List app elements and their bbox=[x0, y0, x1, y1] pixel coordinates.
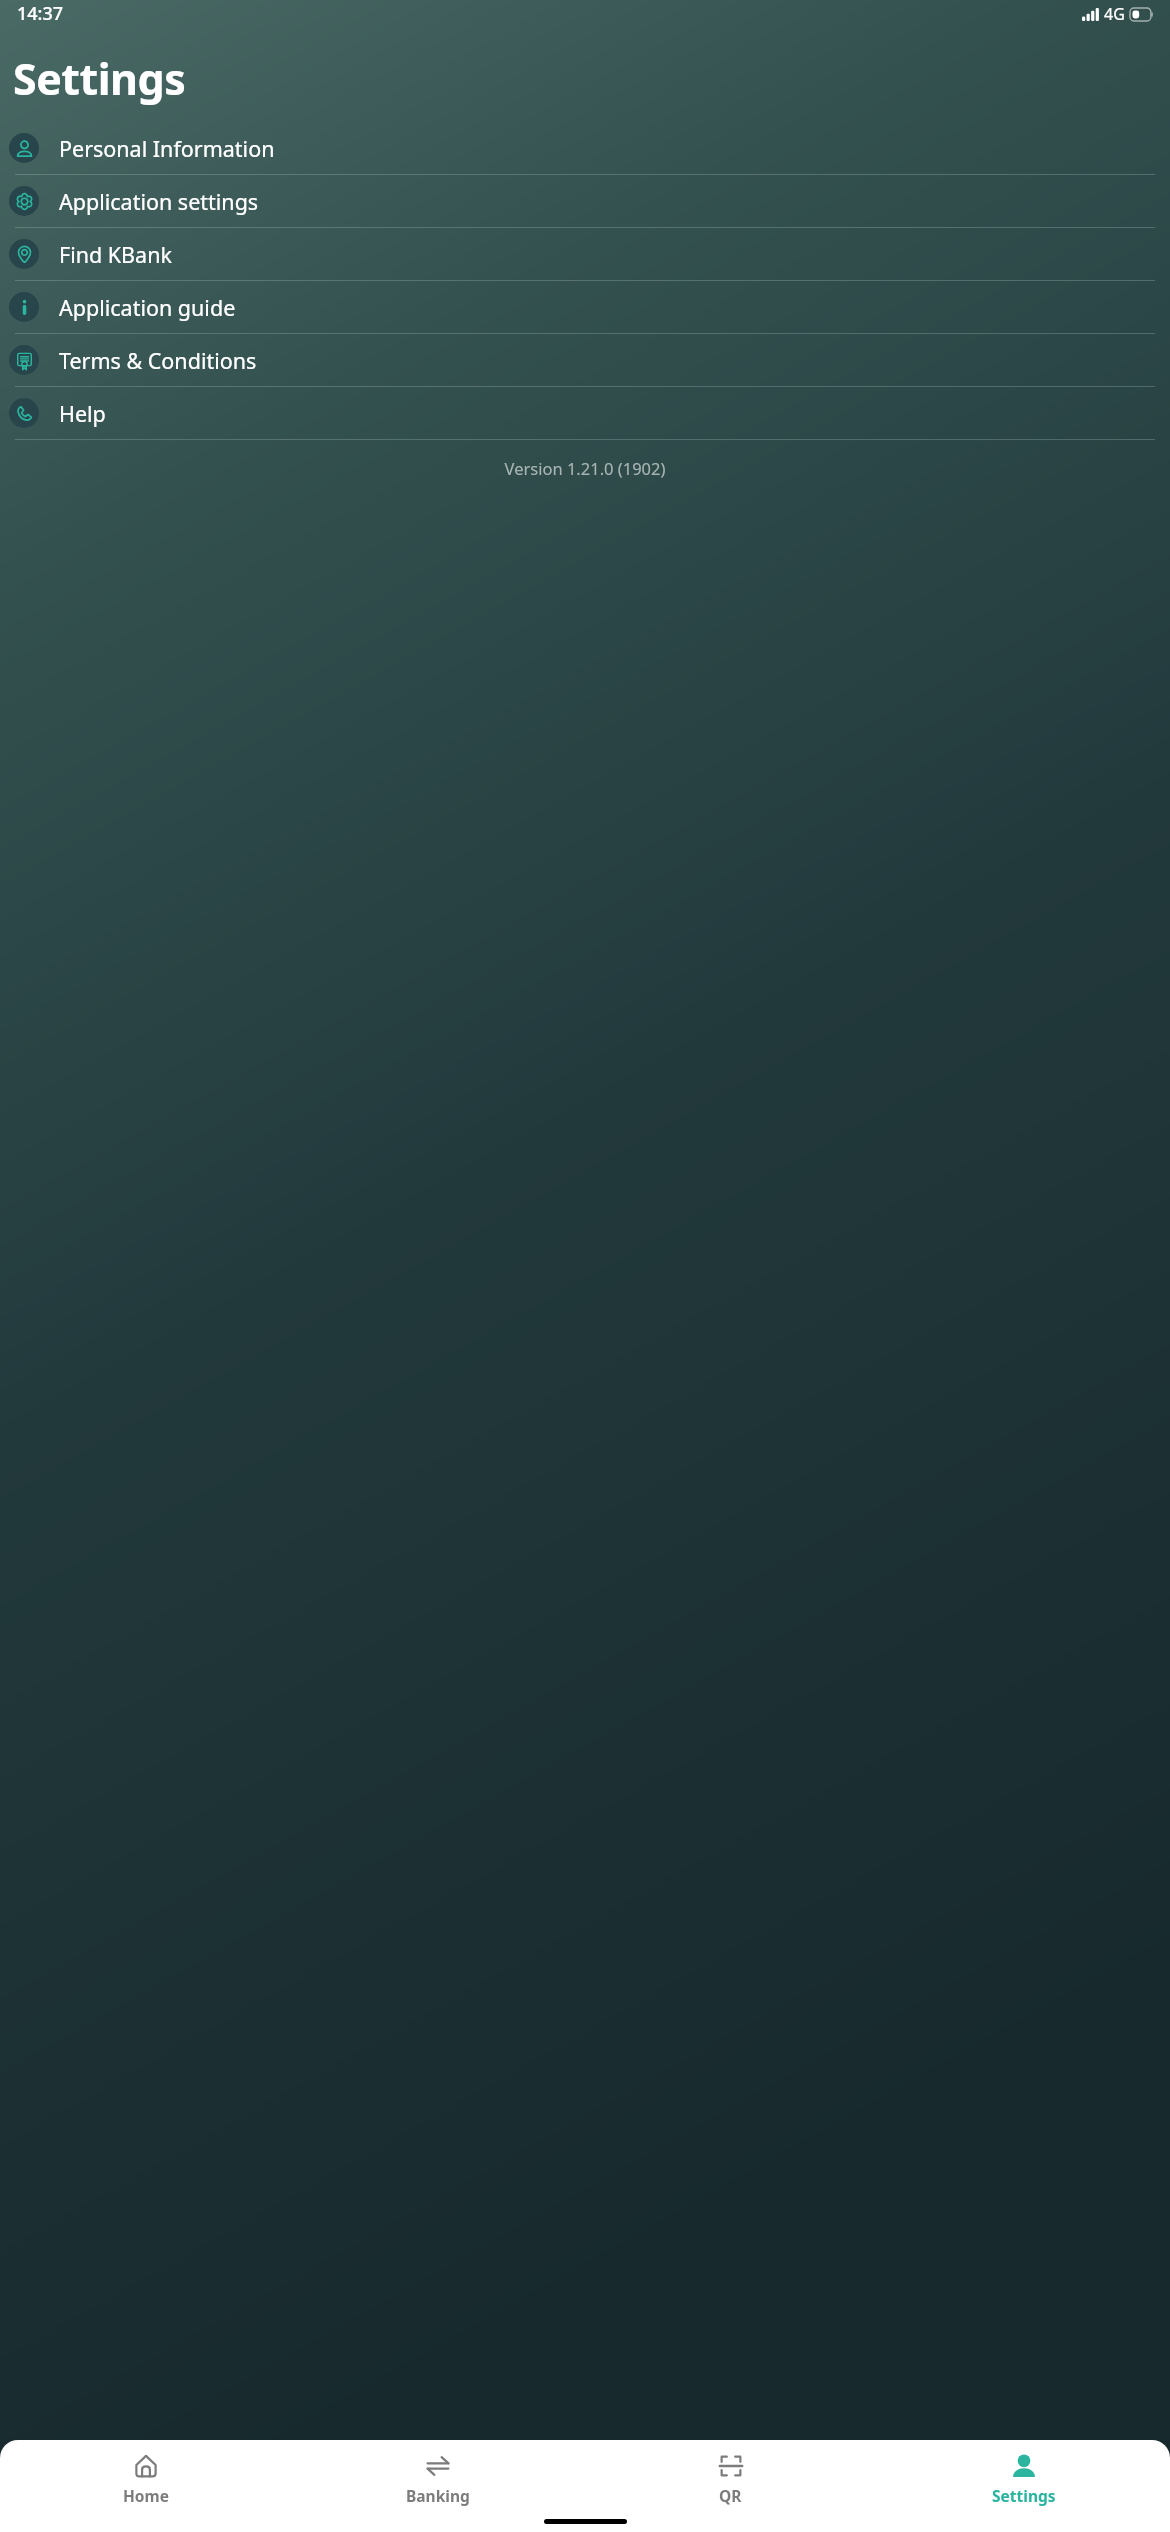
staticText: Find KBank bbox=[59, 240, 172, 269]
button[interactable]: QR bbox=[584, 2453, 877, 2506]
button[interactable]: Help bbox=[0, 387, 1170, 439]
staticText: Application guide bbox=[59, 293, 236, 322]
button[interactable]: Terms & Conditions bbox=[0, 334, 1170, 386]
staticText: Terms & Conditions bbox=[59, 346, 257, 375]
staticText: QR bbox=[719, 2485, 742, 2506]
button[interactable]: Settings bbox=[877, 2453, 1170, 2506]
staticText: Banking bbox=[406, 2485, 470, 2506]
staticText: Settings bbox=[13, 49, 186, 108]
staticText: Version 1.21.0 (1902) bbox=[0, 457, 1170, 479]
button[interactable]: Application settings bbox=[0, 175, 1170, 227]
staticText: 14:37 bbox=[17, 1, 64, 26]
button[interactable]: Home bbox=[0, 2453, 292, 2506]
button[interactable]: Application guide bbox=[0, 281, 1170, 333]
staticText: Home bbox=[123, 2485, 169, 2506]
staticText: 4G bbox=[1104, 3, 1125, 25]
staticText: Personal Information bbox=[59, 134, 275, 163]
staticText: Settings bbox=[992, 2485, 1056, 2506]
staticText: Application settings bbox=[59, 187, 259, 216]
button[interactable]: Banking bbox=[292, 2453, 584, 2506]
button[interactable]: Find KBank bbox=[0, 228, 1170, 280]
staticText: Help bbox=[59, 399, 106, 428]
button[interactable]: Personal Information bbox=[0, 122, 1170, 174]
